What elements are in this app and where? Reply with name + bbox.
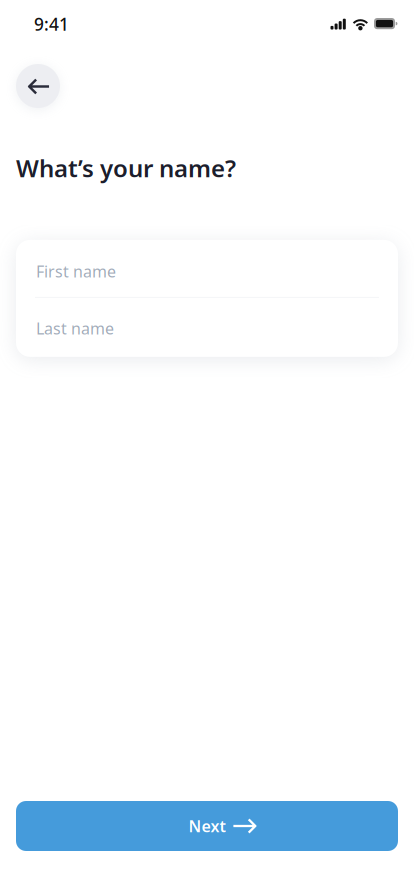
staticText: 9:41	[34, 12, 69, 35]
button[interactable]: First name	[16, 240, 398, 297]
staticText: Last name	[36, 318, 114, 339]
button[interactable]: Last name	[16, 298, 398, 357]
button[interactable]: Next	[16, 801, 398, 851]
staticText: What’s your name?	[16, 152, 236, 184]
button[interactable]: Back	[16, 64, 60, 108]
staticText: First name	[36, 261, 116, 282]
staticText: Next	[188, 815, 225, 837]
